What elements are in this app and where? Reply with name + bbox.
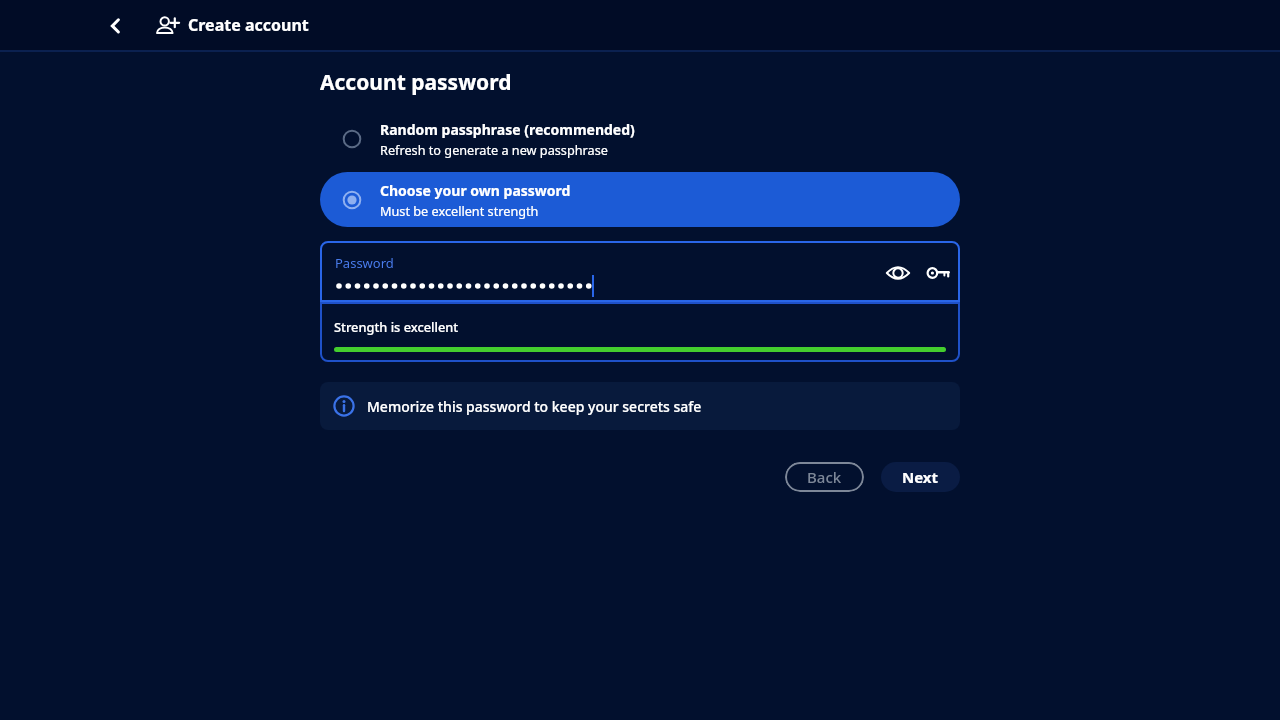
- button[interactable]: [918, 253, 958, 293]
- button[interactable]: [91, 2, 139, 50]
- button[interactable]: Next: [881, 462, 960, 492]
- button[interactable]: Memorize this password to keep your secr…: [320, 382, 960, 430]
- staticText: Must be excellent strength: [380, 202, 539, 219]
- button[interactable]: Choose your own password: [320, 172, 960, 227]
- staticText: Memorize this password to keep your secr…: [367, 397, 702, 416]
- staticText: Random passphrase (recommended): [380, 120, 635, 139]
- staticText: Refresh to generate a new passphrase: [380, 141, 608, 158]
- staticText: Password: [335, 254, 394, 272]
- button[interactable]: Create account: [153, 0, 309, 50]
- button[interactable]: Password: [320, 241, 960, 302]
- button[interactable]: Back: [785, 462, 864, 492]
- staticText: Back: [807, 467, 842, 487]
- staticText: Account password: [320, 68, 512, 97]
- button[interactable]: Random passphrase (recommended): [320, 116, 960, 162]
- staticText: Strength is excellent: [334, 318, 459, 335]
- button[interactable]: [878, 253, 918, 293]
- staticText: Choose your own password: [380, 181, 571, 200]
- staticText: Next: [902, 467, 939, 487]
- staticText: Create account: [188, 14, 309, 36]
